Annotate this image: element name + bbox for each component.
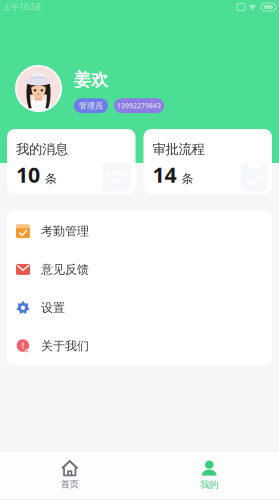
button[interactable]: 设置 [7,289,272,327]
staticText: 管理员 [79,101,103,111]
staticText: 我的 [200,479,218,490]
button[interactable]: 我的 [139,451,279,498]
staticText: 姜欢 [74,69,108,90]
button[interactable]: 意见反馈 [7,250,272,289]
button[interactable]: 我的消息 [7,129,135,194]
staticText: 14 [152,160,176,189]
staticText: 审批流程 [152,141,204,157]
button[interactable]: 关于我们 [7,327,272,365]
staticText: 首页 [61,478,79,490]
staticText: 我的消息 [16,141,68,157]
staticText: 设置 [41,300,65,315]
staticText: 意见反馈 [41,262,89,277]
staticText: 13992279843 [117,101,161,110]
button[interactable]: 首页 [0,451,139,498]
staticText: 10 [16,160,40,189]
button[interactable]: 审批流程 [143,129,272,194]
staticText: 条 [45,171,57,186]
button[interactable]: 考勤管理 [7,212,272,250]
staticText: 考勤管理 [41,224,89,238]
staticText: 上午10:58 [3,2,41,12]
staticText: 条 [181,171,193,186]
staticText: 关于我们 [41,339,89,353]
